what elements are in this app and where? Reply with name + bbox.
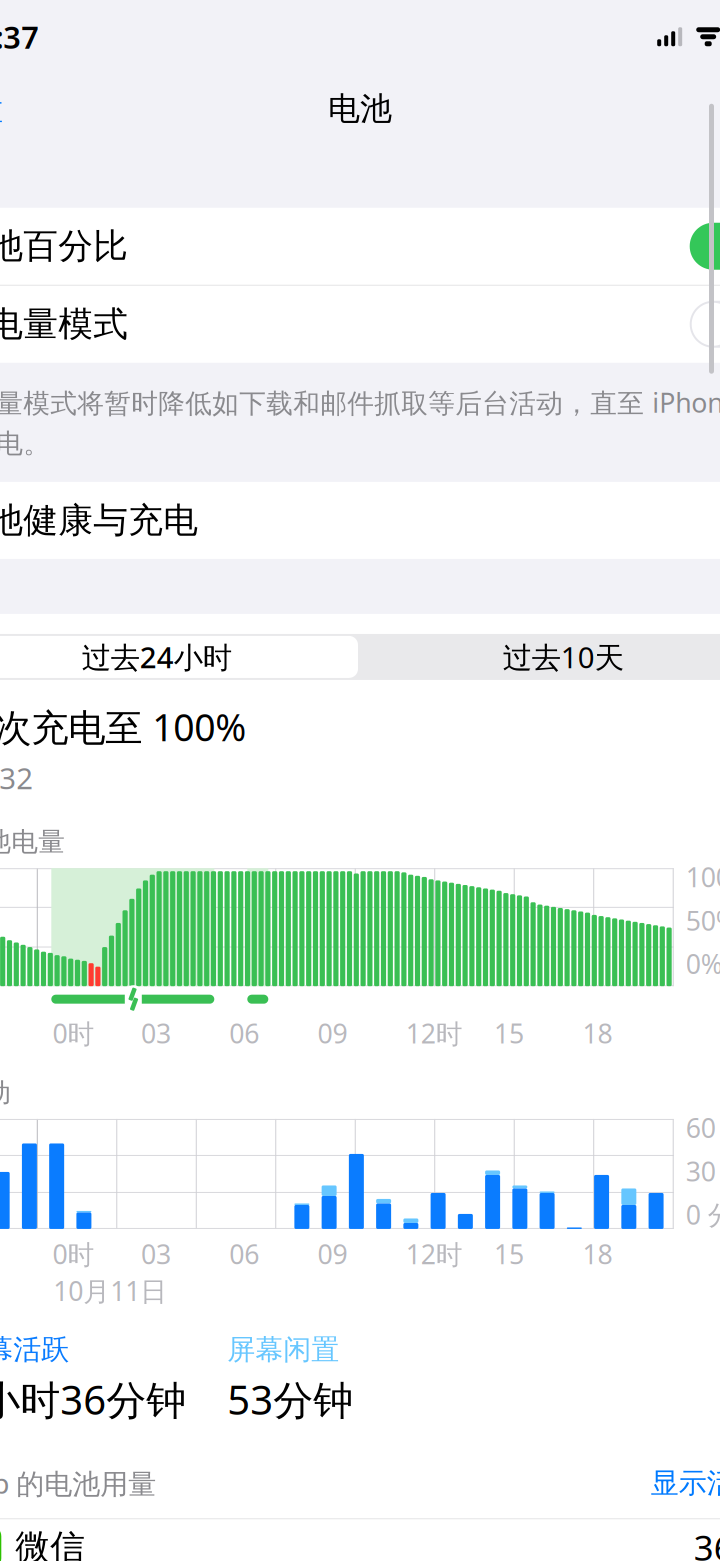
staticText: 低电量模式将暂时降低如下载和邮件抓取等后台活动，直至 iPhone 完全充电。: [0, 385, 720, 460]
staticText: 100%: [686, 859, 720, 895]
staticText: 03: [141, 1236, 171, 1272]
staticText: 电池电量: [0, 825, 65, 858]
staticText: 06: [229, 1236, 259, 1272]
staticText: 设置: [0, 89, 3, 128]
staticText: 电池健康与充电: [0, 499, 198, 542]
staticText: 显示活动: [651, 1466, 720, 1500]
staticText: 15: [494, 1236, 524, 1272]
staticText: 屏幕闲置: [227, 1332, 339, 1367]
staticText: 12时: [406, 1015, 463, 1051]
staticText: 低电量模式: [0, 303, 128, 345]
staticText: 屏幕活跃: [0, 1332, 69, 1367]
staticText: 09: [317, 1015, 347, 1051]
staticText: 30 分钟: [686, 1153, 720, 1189]
staticText: 0%: [686, 946, 720, 981]
staticText: 活动: [0, 1076, 11, 1109]
staticText: 0时: [53, 1015, 95, 1051]
staticText: 0时: [53, 1236, 95, 1272]
button[interactable]: 电池百分比: [0, 208, 720, 285]
staticText: 08:32: [0, 758, 33, 797]
staticText: App 的电池用量: [0, 1464, 156, 1502]
staticText: 过去10天: [503, 637, 624, 676]
staticText: 06: [229, 1015, 259, 1051]
staticText: 15: [494, 1015, 524, 1051]
button[interactable]: 微信: [0, 1519, 720, 1561]
staticText: 36%: [694, 1524, 720, 1561]
staticText: 03: [141, 1015, 171, 1051]
staticText: 电池: [328, 89, 392, 128]
staticText: 过去24小时: [82, 637, 232, 676]
staticText: 0 分钟: [686, 1197, 720, 1232]
staticText: 8小时36分钟: [0, 1373, 186, 1426]
button[interactable]: 电池健康与充电: [0, 482, 720, 559]
staticText: 50%: [686, 903, 720, 938]
staticText: 电池百分比: [0, 225, 128, 267]
staticText: 18: [582, 1236, 612, 1272]
staticText: 53分钟: [227, 1373, 353, 1426]
staticText: 微信: [15, 1526, 85, 1561]
staticText: 12时: [406, 1236, 463, 1272]
button[interactable]: 过去10天: [360, 634, 720, 680]
staticText: 上次充电至 100%: [0, 702, 246, 751]
staticText: 09: [317, 1236, 347, 1272]
staticText: 60 分钟: [686, 1110, 720, 1145]
button[interactable]: 设置: [0, 81, 3, 136]
staticText: 10月11日: [53, 1273, 167, 1308]
staticText: 18: [582, 1015, 612, 1051]
button[interactable]: 显示活动: [651, 1462, 720, 1504]
button[interactable]: 过去24小时: [0, 634, 360, 680]
button[interactable]: 低电量模式: [0, 286, 720, 363]
staticText: 20:37: [0, 16, 39, 57]
